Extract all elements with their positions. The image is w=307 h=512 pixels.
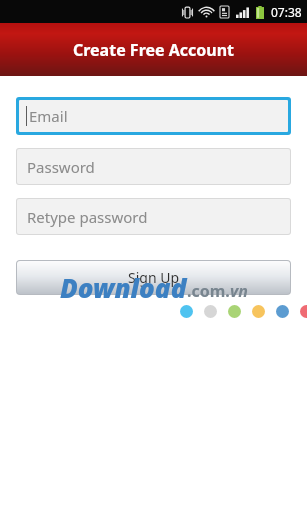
staticText: 07:38 — [271, 4, 302, 20]
button[interactable]: Email — [19, 100, 288, 132]
staticText: Email — [29, 106, 68, 126]
staticText: .com. — [187, 280, 230, 302]
staticText: Password — [27, 157, 95, 177]
staticText: vn — [230, 280, 248, 302]
staticText: Sign Up — [128, 268, 180, 287]
staticText: Create Free Account — [0, 39, 307, 61]
button[interactable]: Password — [17, 149, 290, 184]
staticText: Download — [60, 270, 187, 305]
staticText: Retype password — [27, 207, 148, 227]
button[interactable]: Sign Up — [17, 261, 290, 294]
button[interactable]: Retype password — [17, 199, 290, 234]
